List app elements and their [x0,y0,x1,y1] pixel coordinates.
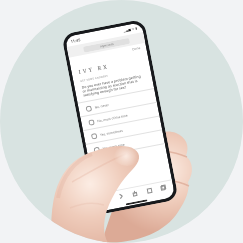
button[interactable]: Yes, sometimes [83,116,162,144]
button[interactable]: ivyrx.com [83,38,130,53]
staticText: Yes, every time [102,142,126,151]
staticText: ivyrx.com [100,42,114,48]
button[interactable]: Forward [115,190,127,202]
staticText: I V Y R X [78,63,108,75]
button[interactable]: Done [132,46,141,51]
staticText: ▁▃▅ ᯤ ▮ [123,26,138,33]
staticText: No, never [94,103,110,110]
button[interactable]: No, most of the time [80,103,159,130]
button[interactable]: Tabs [157,182,169,194]
button[interactable]: No, never [78,89,157,116]
button[interactable]: Bookmarks [144,185,155,196]
button[interactable]: Back [101,193,112,205]
button[interactable]: Hand holding a phone showing the IVY RX … [0,0,243,243]
staticText: Yes, sometimes [100,129,124,137]
staticText: Done [132,46,141,51]
staticText: No, most of the time [97,113,128,123]
staticText: 11:45 [70,37,81,44]
staticText: GET SOME ANSWERS [80,74,109,83]
button[interactable]: 11:45 [65,22,175,212]
staticText: Do you ever have a problem getting or ma… [81,73,146,98]
button[interactable]: Yes, every time [86,130,165,158]
button[interactable]: Share [129,188,141,199]
